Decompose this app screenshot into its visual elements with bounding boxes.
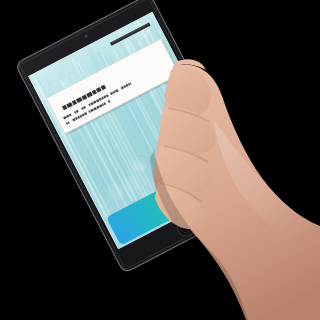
button[interactable]: Hand holding a tablet running QuizGenera… bbox=[0, 0, 320, 320]
